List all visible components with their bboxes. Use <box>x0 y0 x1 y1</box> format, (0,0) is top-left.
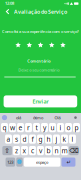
button[interactable]: x <box>21 146 28 155</box>
button[interactable]: Rate star <box>38 42 43 48</box>
staticText: h <box>46 135 50 144</box>
staticText: Comentário <box>27 58 50 64</box>
button[interactable]: ⌫ <box>69 146 79 155</box>
staticText: e <box>18 123 22 132</box>
button[interactable]: u <box>49 123 56 132</box>
staticText: g <box>38 135 42 144</box>
button[interactable]: o <box>65 123 72 132</box>
staticText: Olá <box>54 115 60 120</box>
staticText: u <box>50 123 54 132</box>
staticText: j <box>55 135 57 144</box>
button[interactable]: v <box>37 146 44 155</box>
button[interactable]: m <box>61 146 68 155</box>
staticText: ⌫ <box>69 147 78 154</box>
button[interactable]: l <box>69 134 76 144</box>
button[interactable]: ⇧ <box>2 146 12 155</box>
button[interactable]: Back <box>6 9 9 14</box>
staticText: n <box>54 146 58 155</box>
staticText: p <box>74 123 78 132</box>
button[interactable]: 🌐 <box>16 157 23 167</box>
staticText: s <box>15 135 18 144</box>
button[interactable]: ↵ <box>61 157 75 167</box>
staticText: Avaliação do Serviço <box>14 8 67 15</box>
button[interactable]: j <box>53 134 60 144</box>
button[interactable]: t <box>33 123 40 132</box>
staticText: k <box>62 135 66 144</box>
button[interactable]: d <box>21 134 28 144</box>
button[interactable]: c <box>29 146 36 155</box>
staticText: v <box>39 146 42 155</box>
staticText: Como foi a sua experiência com o serviço… <box>2 29 79 34</box>
button[interactable]: k <box>61 134 68 144</box>
button[interactable]: q <box>1 123 8 132</box>
button[interactable]: Rate star <box>60 42 66 48</box>
staticText: olá <box>16 115 21 120</box>
button[interactable]: 123 <box>6 157 15 167</box>
staticText: f <box>31 135 33 144</box>
staticText: Enviar <box>32 98 48 105</box>
staticText: q <box>2 123 6 132</box>
staticText: m <box>61 146 67 155</box>
staticText: w <box>10 123 15 132</box>
button[interactable]: espaço <box>24 157 60 167</box>
staticText: t <box>35 123 37 132</box>
staticText: Deixe o seu comentário <box>18 67 59 73</box>
staticText: o <box>66 123 70 132</box>
staticText: r <box>27 123 30 132</box>
button[interactable]: e <box>17 123 24 132</box>
button[interactable]: Rate star <box>49 42 54 48</box>
button[interactable]: z <box>13 146 20 155</box>
staticText: z <box>15 146 18 155</box>
staticText: espaço <box>36 159 48 165</box>
button[interactable]: r <box>25 123 32 132</box>
button[interactable]: h <box>45 134 52 144</box>
button[interactable]: a <box>5 134 12 144</box>
button[interactable]: f <box>29 134 36 144</box>
staticText: d <box>22 135 26 144</box>
button[interactable]: y <box>41 123 48 132</box>
staticText: x <box>22 146 26 155</box>
button[interactable]: Rate star <box>26 42 32 48</box>
staticText: 123 <box>7 159 13 165</box>
button[interactable]: s <box>13 134 20 144</box>
button[interactable]: i <box>57 123 64 132</box>
staticText: 🌐 <box>17 160 22 164</box>
staticText: b <box>46 146 50 155</box>
button[interactable]: p <box>73 123 80 132</box>
button[interactable]: Enviar <box>4 95 77 107</box>
button[interactable]: b <box>45 146 52 155</box>
button[interactable]: Rate star <box>15 42 21 48</box>
staticText: c <box>31 146 34 155</box>
staticText: ↵ <box>66 159 70 165</box>
staticText: i <box>59 123 61 132</box>
staticText: ⇧ <box>4 147 10 154</box>
staticText: ótimo <box>33 115 43 120</box>
button[interactable]: g <box>37 134 44 144</box>
staticText: a <box>6 135 10 144</box>
staticText: l <box>71 135 73 144</box>
staticText: y <box>43 123 46 132</box>
button[interactable]: n <box>53 146 60 155</box>
button[interactable]: w <box>9 123 16 132</box>
staticText: 12:08 <box>5 1 14 6</box>
